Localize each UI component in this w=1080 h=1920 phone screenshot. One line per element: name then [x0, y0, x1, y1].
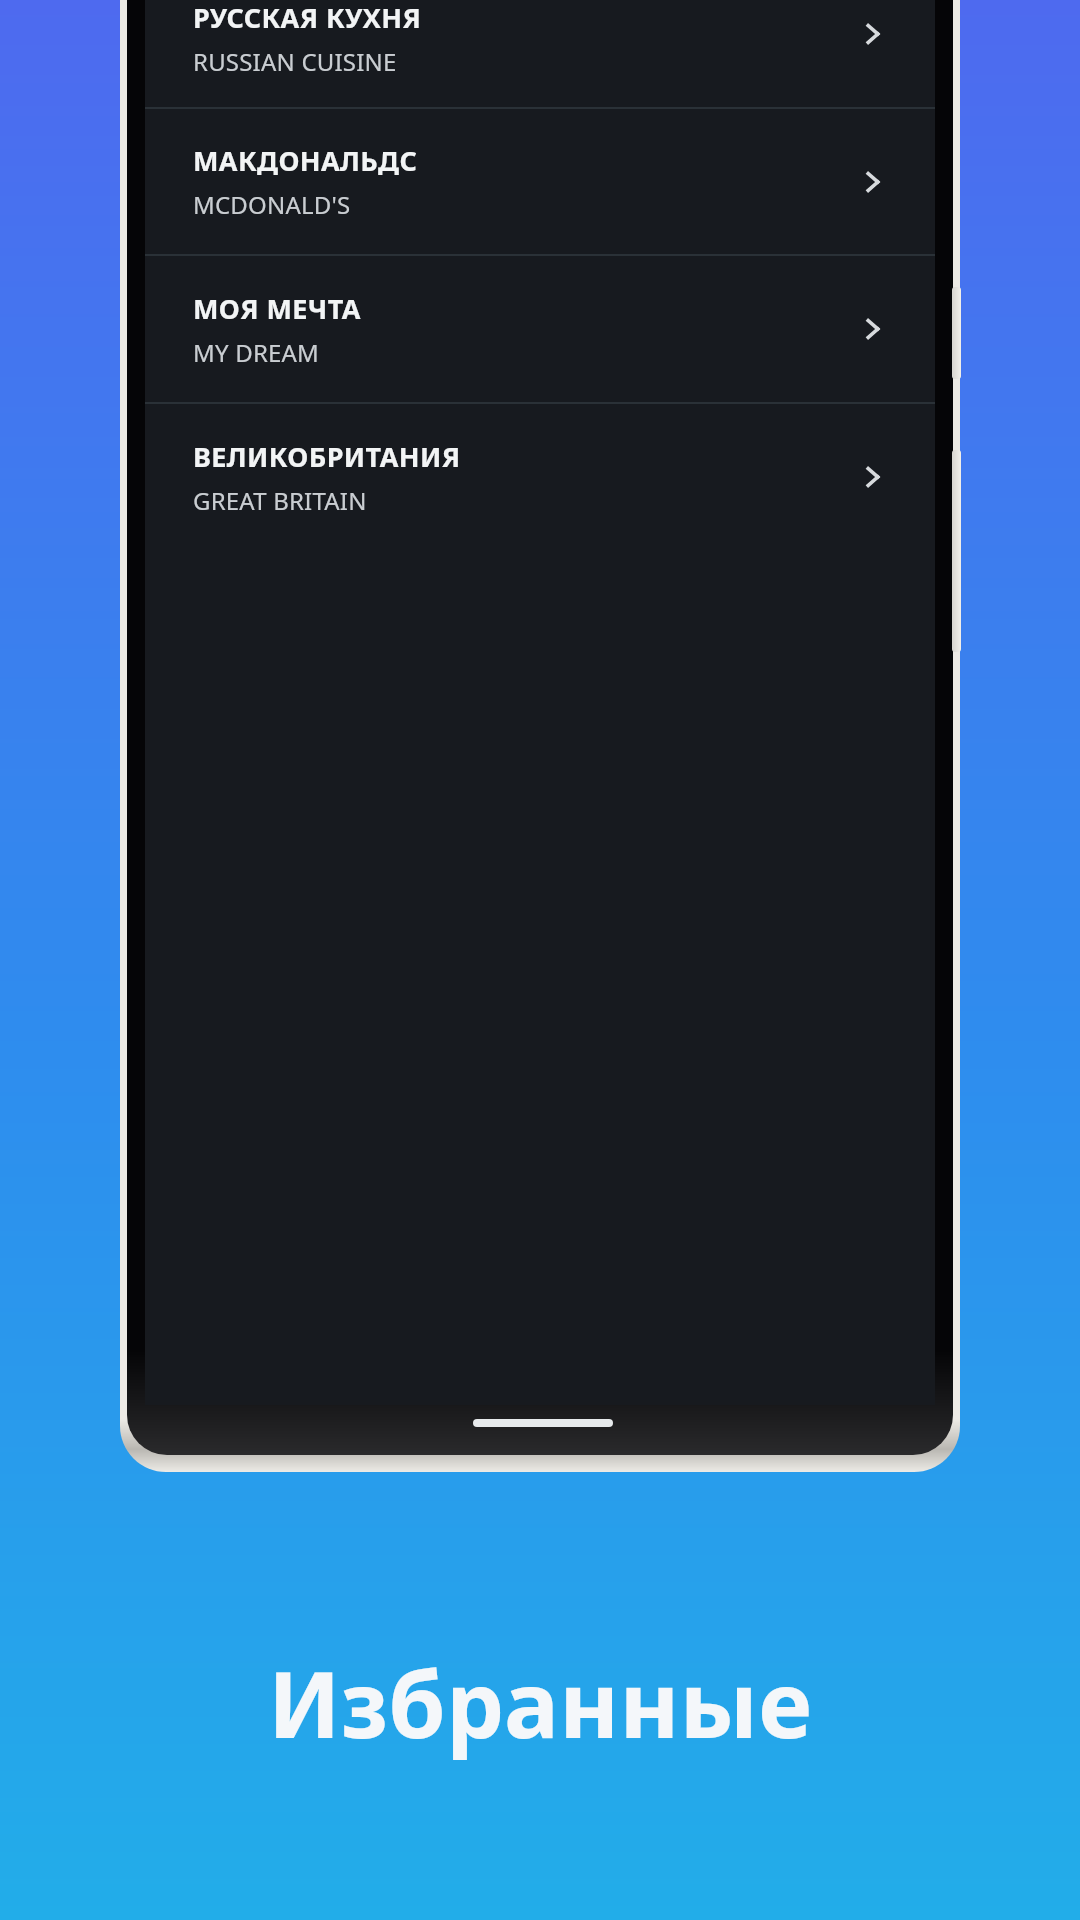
button[interactable]: РУССКАЯ КУХНЯ — [145, 0, 935, 107]
other: Open RUSSIAN CUISINE — [847, 8, 899, 60]
staticText: МОЯ МЕЧТА — [193, 290, 361, 327]
staticText: Избранные — [0, 1640, 1080, 1765]
staticText: MCDONALD'S — [193, 188, 351, 221]
staticText: ВЕЛИКОБРИТАНИЯ — [193, 438, 461, 475]
staticText: MY DREAM — [193, 336, 320, 369]
other: Open MY DREAM — [847, 303, 899, 355]
button[interactable]: ВЕЛИКОБРИТАНИЯ — [145, 404, 935, 550]
staticText: РУССКАЯ КУХНЯ — [193, 0, 422, 36]
other: Open MCDONALD'S — [847, 156, 899, 208]
staticText: RUSSIAN CUISINE — [193, 45, 397, 78]
other: Open GREAT BRITAIN — [847, 451, 899, 503]
button[interactable]: МОЯ МЕЧТА — [145, 256, 935, 402]
button[interactable]: МАКДОНАЛЬДС — [145, 109, 935, 254]
staticText: GREAT BRITAIN — [193, 484, 367, 517]
staticText: МАКДОНАЛЬДС — [193, 142, 418, 179]
